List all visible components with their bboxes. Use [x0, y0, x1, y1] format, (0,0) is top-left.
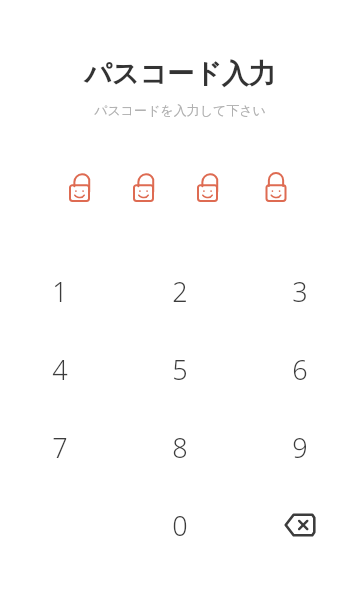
- staticText: 2: [172, 273, 188, 310]
- staticText: パスコードを入力して下さい: [94, 102, 266, 118]
- staticText: 8: [172, 429, 188, 466]
- staticText: 0: [172, 507, 188, 544]
- button[interactable]: 7: [0, 408, 120, 486]
- button[interactable]: 2: [120, 252, 240, 330]
- button[interactable]: 6: [240, 330, 360, 408]
- staticText: 3: [292, 273, 308, 310]
- staticText: パスコード入力: [84, 57, 276, 91]
- button[interactable]: 9: [240, 408, 360, 486]
- staticText: 6: [292, 351, 308, 388]
- staticText: 9: [292, 429, 308, 466]
- button[interactable]: 4: [0, 330, 120, 408]
- staticText: 4: [52, 351, 68, 388]
- button[interactable]: 0: [120, 486, 240, 564]
- staticText: 7: [52, 429, 68, 466]
- button[interactable]: 1: [0, 252, 120, 330]
- button[interactable]: 8: [120, 408, 240, 486]
- staticText: 5: [172, 351, 188, 388]
- button[interactable]: 3: [240, 252, 360, 330]
- button[interactable]: Backspace: [240, 486, 360, 564]
- staticText: 1: [52, 273, 68, 310]
- button[interactable]: 5: [120, 330, 240, 408]
